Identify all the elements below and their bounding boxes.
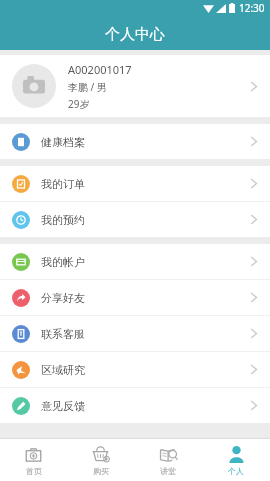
staticText: 12:30 xyxy=(239,1,265,15)
button[interactable]: 我的预约 xyxy=(0,202,270,237)
staticText: 个人 xyxy=(228,466,244,476)
button[interactable]: A002001017 xyxy=(0,55,270,117)
staticText: 我的订单 xyxy=(41,177,250,191)
staticText: 我的预约 xyxy=(41,213,250,227)
staticText: 讲堂 xyxy=(160,466,176,476)
staticText: 健康档案 xyxy=(41,135,250,149)
staticText: 个人中心 xyxy=(105,25,165,44)
button[interactable]: 区域研究 xyxy=(0,352,270,387)
button[interactable]: 个人 xyxy=(202,439,270,481)
button[interactable]: 联系客服 xyxy=(0,316,270,351)
staticText: A002001017 xyxy=(68,62,132,77)
staticText: 联系客服 xyxy=(41,327,250,341)
staticText: 区域研究 xyxy=(41,363,250,377)
button[interactable]: 我的订单 xyxy=(0,166,270,201)
staticText: 首页 xyxy=(26,466,42,476)
staticText: 我的帐户 xyxy=(41,255,250,269)
button[interactable]: 健康档案 xyxy=(0,124,270,159)
staticText: 分享好友 xyxy=(41,291,250,305)
button[interactable]: 购买 xyxy=(67,439,134,481)
staticText: 意见反馈 xyxy=(41,399,250,413)
staticText: 李鹏 / 男 xyxy=(68,80,107,94)
button[interactable]: 我的帐户 xyxy=(0,244,270,279)
button[interactable]: 分享好友 xyxy=(0,280,270,315)
staticText: 29岁 xyxy=(68,97,90,111)
button[interactable]: 讲堂 xyxy=(134,439,202,481)
button[interactable]: 首页 xyxy=(0,439,67,481)
button[interactable]: 意见反馈 xyxy=(0,388,270,423)
staticText: 购买 xyxy=(93,466,109,476)
